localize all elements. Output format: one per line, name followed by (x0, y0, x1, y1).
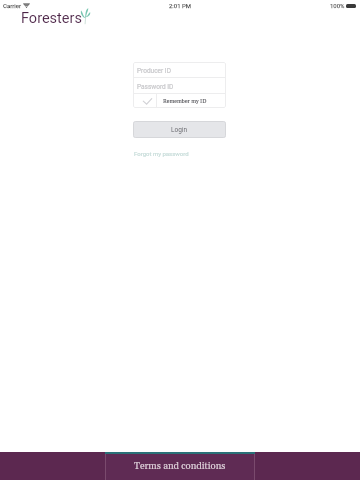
staticText: 2:01 PM (169, 2, 192, 9)
button[interactable]: Forgot my password (132, 149, 191, 158)
staticText: Password ID (137, 83, 174, 91)
staticText: Login (171, 126, 188, 134)
button[interactable]: Producer ID (133, 62, 226, 77)
button[interactable]: Terms and conditions (105, 452, 255, 480)
staticText: Remember my ID (163, 98, 207, 105)
staticText: Carrier (3, 2, 21, 9)
button[interactable]: Password ID (133, 78, 226, 93)
staticText: 100% (330, 2, 345, 9)
staticText: Producer ID (137, 67, 171, 75)
button[interactable]: Remember my ID (133, 94, 226, 108)
button[interactable]: Login (133, 121, 226, 138)
staticText: Terms and conditions (134, 460, 226, 472)
staticText: Foresters (21, 10, 82, 27)
